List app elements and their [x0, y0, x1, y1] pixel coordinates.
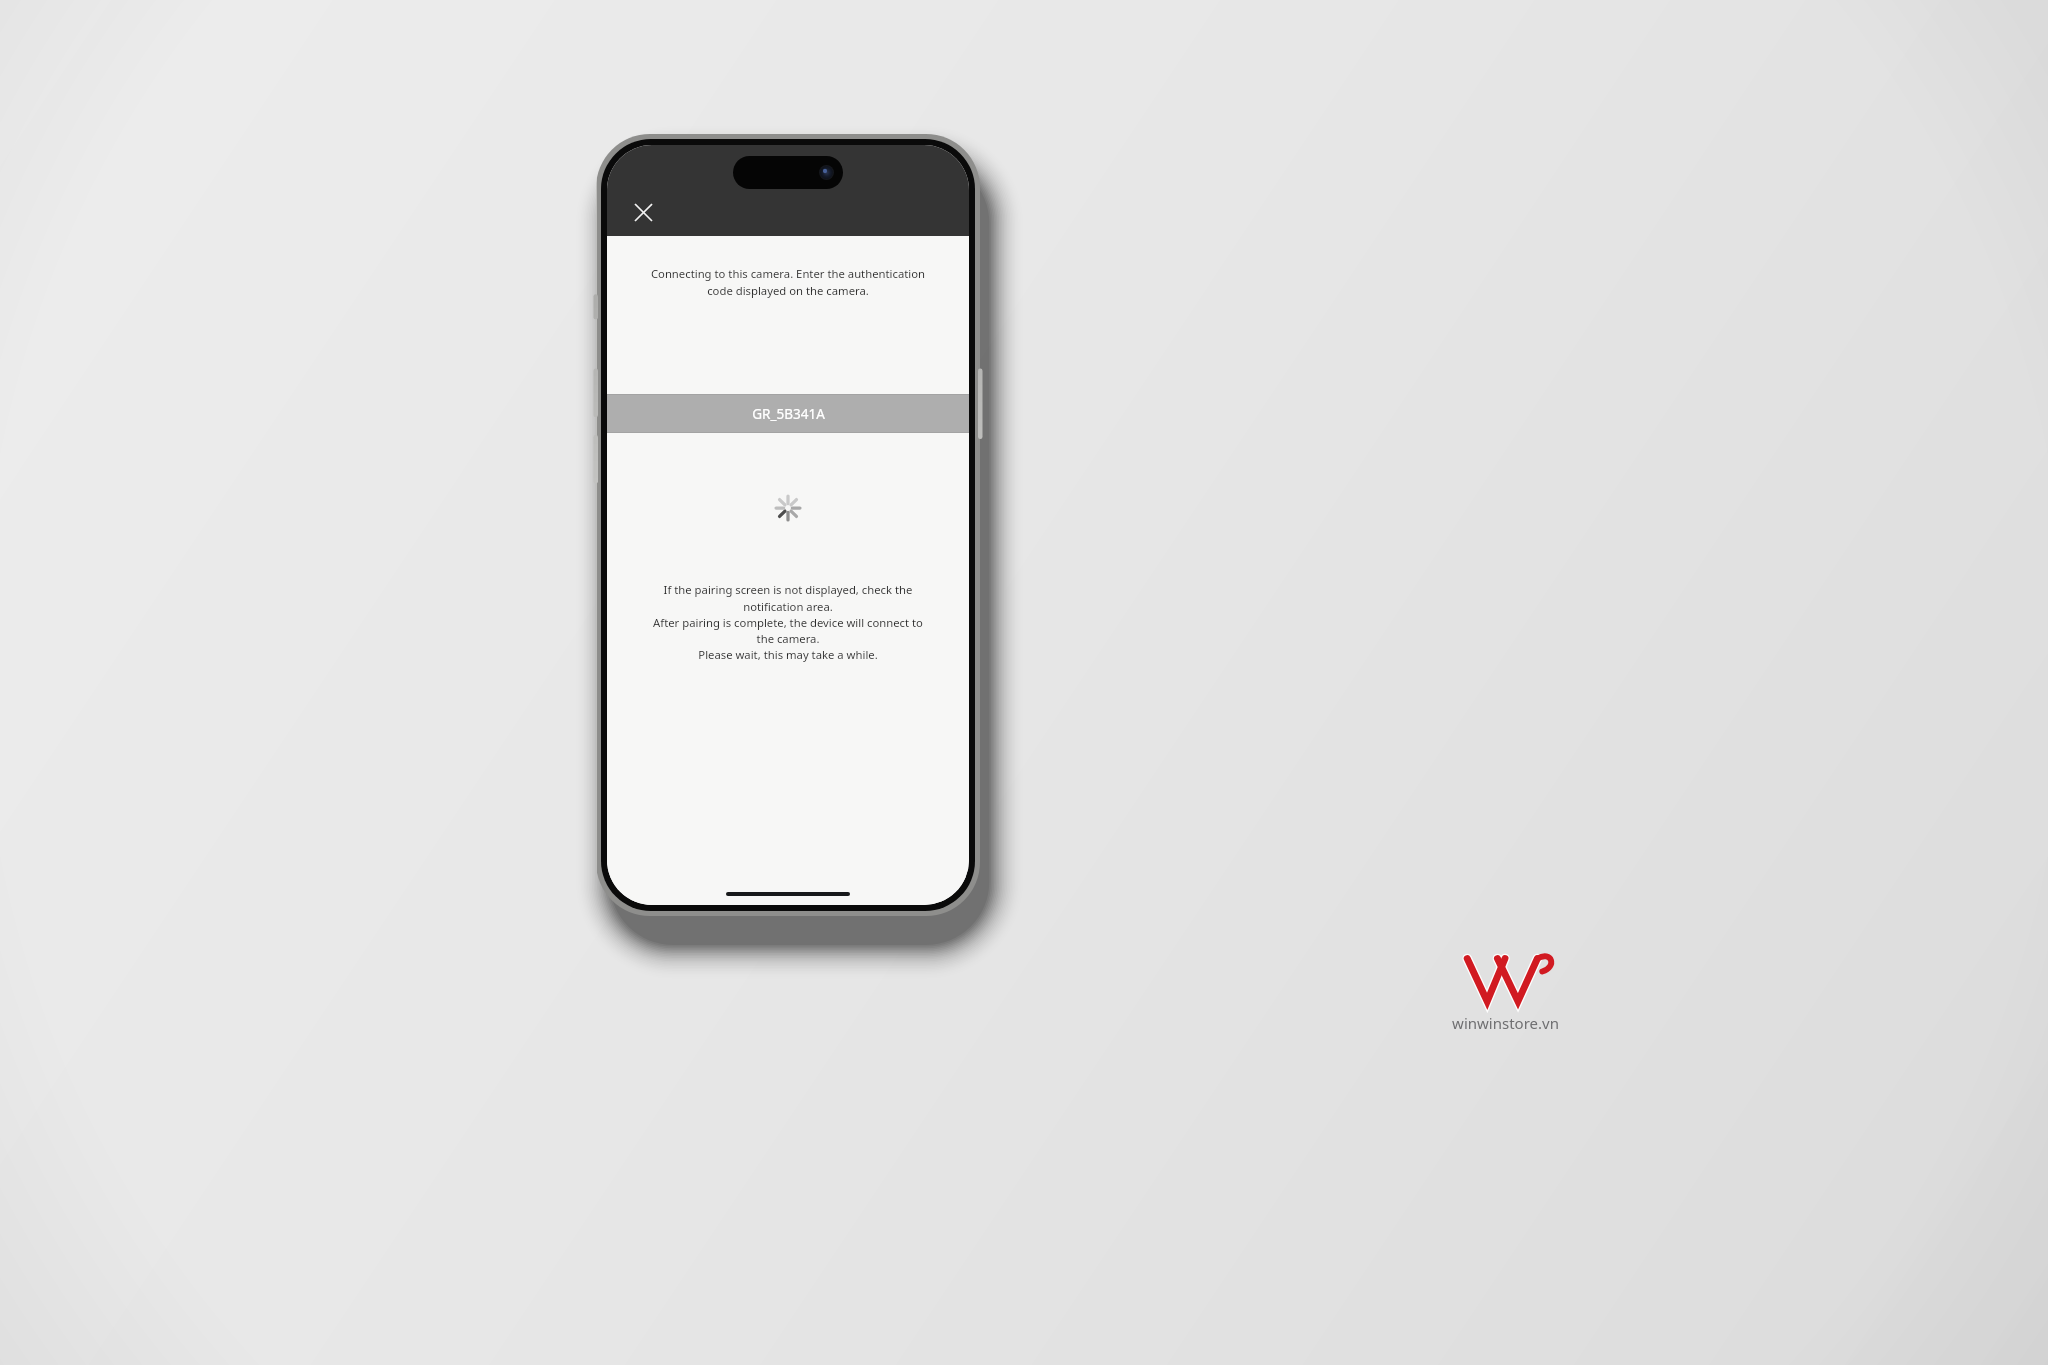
- staticText: Connecting to this camera. Enter the aut…: [623, 266, 953, 298]
- button[interactable]: Close: [623, 192, 663, 232]
- staticText: GR_5B341A: [752, 405, 825, 423]
- button[interactable]: GR_5B341A: [607, 394, 969, 433]
- staticText: winwinstore.vn: [1452, 1013, 1559, 1033]
- staticText: If the pairing screen is not displayed, …: [619, 582, 957, 662]
